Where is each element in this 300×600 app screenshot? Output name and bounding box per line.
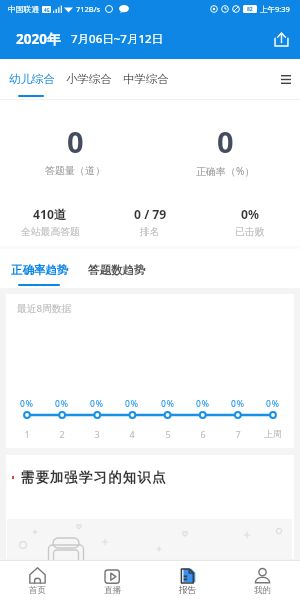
button[interactable]: 小学综合	[66, 72, 112, 86]
staticText: 0%	[231, 398, 245, 410]
staticText: 82	[247, 6, 253, 13]
staticText: 5	[165, 428, 171, 440]
staticText: 4	[129, 428, 135, 440]
staticText: 0%	[196, 398, 210, 410]
staticText: 答题数趋势	[88, 263, 146, 277]
staticText: 上午9:39	[260, 4, 290, 14]
staticText: 0	[217, 122, 234, 161]
staticText: 4G	[44, 7, 50, 13]
staticText: 正确率（%）	[196, 164, 255, 178]
staticText: 6	[200, 428, 206, 440]
button[interactable]: 答题数趋势	[88, 263, 146, 277]
button[interactable]: 报告	[150, 564, 225, 596]
staticText: 直播	[104, 585, 122, 596]
staticText: 0%	[266, 398, 280, 410]
staticText: 0%	[161, 398, 175, 410]
staticText: 我的	[254, 585, 272, 596]
staticText: 0%	[55, 398, 69, 410]
staticText: 0	[67, 122, 84, 161]
button[interactable]: 直播	[75, 564, 150, 596]
staticText: 410道	[33, 206, 67, 223]
staticText: 3	[94, 428, 100, 440]
staticText: 已击败	[235, 226, 265, 238]
staticText: 中学综合	[123, 72, 169, 86]
staticText: 答题量（道）	[45, 164, 105, 177]
staticText: 7	[235, 428, 241, 440]
staticText: 0%	[90, 398, 104, 410]
staticText: 排名	[140, 226, 160, 238]
button[interactable]: 中学综合	[123, 72, 169, 86]
staticText: 0%	[20, 398, 34, 410]
staticText: 中国联通	[8, 4, 40, 14]
staticText: 2	[59, 428, 65, 440]
staticText: 幼儿综合	[9, 72, 55, 86]
staticText: 7月06日~7月12日	[71, 31, 164, 47]
staticText: 上周	[264, 428, 282, 439]
button[interactable]: Share	[269, 27, 293, 51]
staticText: 0 / 79	[134, 206, 167, 223]
button[interactable]: 首页	[0, 564, 75, 596]
staticText: 最近8周数据	[17, 302, 72, 315]
staticText: 1	[24, 428, 30, 440]
staticText: 712B/s	[76, 4, 101, 14]
staticText: 0%	[125, 398, 139, 410]
button[interactable]: Menu	[271, 64, 300, 94]
staticText: 2020年	[16, 30, 61, 48]
staticText: 正确率趋势	[11, 263, 69, 277]
staticText: 小学综合	[66, 72, 112, 86]
staticText: 报告	[179, 585, 197, 596]
staticText: 首页	[29, 585, 47, 596]
button[interactable]: 幼儿综合	[9, 72, 55, 86]
staticText: 0%	[241, 206, 259, 223]
button[interactable]: 我的	[225, 564, 300, 596]
button[interactable]: 正确率趋势	[11, 263, 69, 277]
staticText: 需要加强学习的知识点	[20, 469, 166, 486]
staticText: 全站最高答题	[21, 226, 80, 238]
